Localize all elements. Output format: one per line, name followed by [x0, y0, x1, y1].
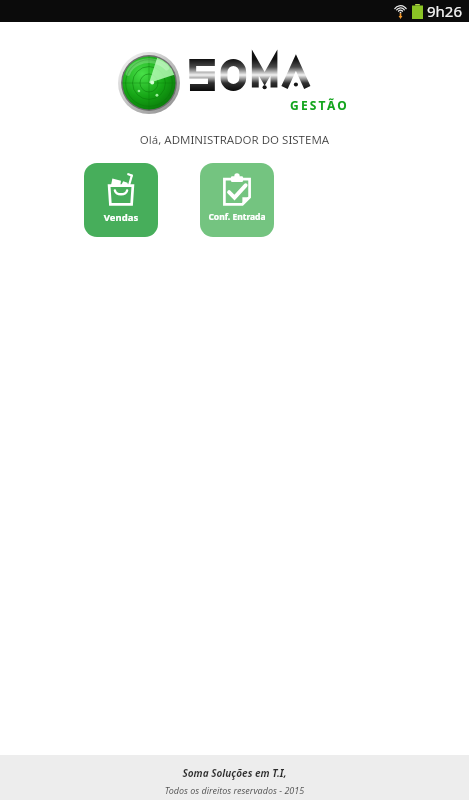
staticText: Soma Soluções em T.I, [0, 766, 469, 780]
staticText: Olá, ADMINISTRADOR DO SISTEMA [0, 132, 469, 148]
button[interactable]: Conf. Entrada [200, 163, 274, 237]
staticText: Conf. Entrada [200, 211, 274, 223]
staticText: Vendas [84, 211, 158, 224]
staticText: GESTÃO [290, 97, 349, 113]
button[interactable]: Vendas [84, 163, 158, 237]
staticText: 9h26 [427, 1, 463, 21]
staticText: Todos os direitos reservados - 2015 [0, 784, 469, 796]
